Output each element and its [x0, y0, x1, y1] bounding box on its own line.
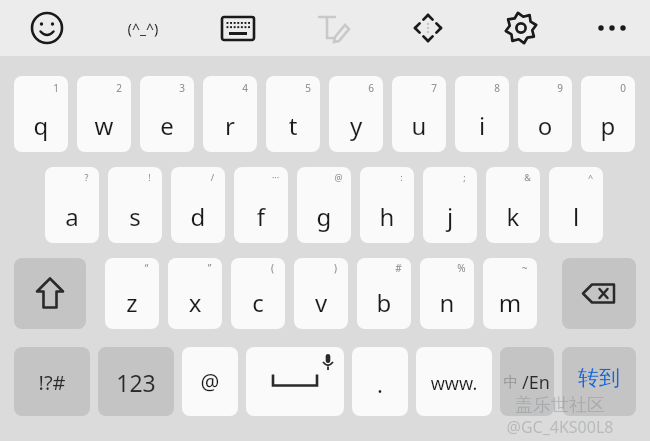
button[interactable]: Shift — [14, 258, 86, 329]
staticText: x — [168, 286, 222, 319]
button[interactable]: Backspace — [562, 258, 636, 329]
staticText: a — [45, 200, 99, 233]
staticText: /En — [518, 370, 554, 395]
button[interactable]: e — [140, 76, 194, 152]
button[interactable]: Go — [562, 347, 636, 416]
button[interactable]: g — [297, 167, 351, 243]
staticText: q — [14, 109, 68, 142]
staticText: 3 — [174, 81, 190, 95]
button[interactable]: s — [108, 167, 162, 243]
staticText: f — [234, 200, 288, 233]
button[interactable]: h — [360, 167, 414, 243]
staticText: ; — [456, 171, 473, 183]
staticText: 9 — [552, 81, 568, 95]
button[interactable]: v — [294, 258, 348, 329]
staticText: www. — [416, 371, 492, 396]
staticText: e — [140, 109, 194, 142]
staticText: (^_^) — [113, 19, 173, 38]
button[interactable]: Settings — [499, 6, 543, 50]
button[interactable]: y — [329, 76, 383, 152]
staticText: # — [390, 261, 407, 275]
button[interactable]: b — [357, 258, 411, 329]
staticText: / — [204, 171, 221, 183]
staticText: ? — [78, 171, 95, 183]
staticText: d — [171, 200, 225, 233]
button[interactable]: Space — [246, 347, 344, 416]
button[interactable]: More options — [590, 6, 634, 50]
staticText: 6 — [363, 81, 379, 95]
staticText: & — [519, 171, 536, 183]
button[interactable]: www dot — [416, 347, 492, 416]
button[interactable]: Space — [246, 347, 344, 416]
button[interactable]: Keyboard — [216, 6, 260, 50]
button[interactable]: At sign — [182, 347, 238, 416]
staticText: !?# — [14, 369, 90, 396]
button[interactable]: m — [483, 258, 537, 329]
staticText: ) — [327, 261, 344, 275]
button[interactable]: o — [518, 76, 572, 152]
button[interactable]: Shift — [14, 258, 86, 329]
button[interactable]: p — [581, 76, 635, 152]
button[interactable]: Numbers — [98, 347, 174, 416]
staticText: r — [203, 109, 257, 142]
button[interactable]: t — [266, 76, 320, 152]
staticText: c — [231, 286, 285, 319]
staticText: 2 — [111, 81, 127, 95]
button[interactable]: f — [234, 167, 288, 243]
staticText: y — [329, 109, 383, 142]
staticText: ( — [264, 261, 281, 275]
button[interactable]: j — [423, 167, 477, 243]
button[interactable]: a — [45, 167, 99, 243]
button[interactable]: Period — [352, 347, 408, 416]
staticText: 4 — [237, 81, 253, 95]
staticText: p — [581, 109, 635, 142]
staticText: 5 — [300, 81, 316, 95]
staticText: 7 — [426, 81, 442, 95]
button[interactable]: w — [77, 76, 131, 152]
staticText: ~ — [516, 261, 533, 275]
staticText: ! — [141, 171, 158, 183]
staticText: s — [108, 200, 162, 233]
button[interactable]: u — [392, 76, 446, 152]
button[interactable]: d — [171, 167, 225, 243]
button[interactable]: x — [168, 258, 222, 329]
staticText: ^ — [582, 171, 599, 183]
button[interactable]: c — [231, 258, 285, 329]
staticText: j — [423, 200, 477, 233]
staticText: @GC_4KS00L8 — [480, 416, 640, 438]
button[interactable]: r — [203, 76, 257, 152]
button[interactable]: Emoji — [25, 6, 69, 50]
button[interactable]: Kaomoji — [113, 6, 173, 50]
staticText: “ — [138, 261, 155, 275]
staticText: 转到 — [562, 365, 636, 391]
staticText: @ — [330, 171, 347, 183]
button[interactable]: Move cursor — [406, 6, 450, 50]
staticText: n — [420, 286, 474, 319]
staticText: 123 — [98, 367, 174, 398]
staticText: 盖乐世社区 — [480, 394, 640, 417]
button[interactable]: q — [14, 76, 68, 152]
staticText: 1 — [48, 81, 64, 95]
button[interactable]: k — [486, 167, 540, 243]
staticText: 中 — [498, 373, 524, 392]
button[interactable]: Symbols — [14, 347, 90, 416]
button[interactable]: Backspace — [562, 258, 636, 329]
staticText: m — [483, 286, 537, 319]
staticText: i — [455, 109, 509, 142]
staticText: k — [486, 200, 540, 233]
staticText: t — [266, 109, 320, 142]
staticText: u — [392, 109, 446, 142]
staticText: h — [360, 200, 414, 233]
staticText: ··· — [267, 171, 284, 183]
staticText: . — [352, 369, 408, 399]
staticText: 0 — [615, 81, 631, 95]
button[interactable]: Switch language — [500, 347, 554, 416]
button[interactable]: l — [549, 167, 603, 243]
staticText: @ — [182, 368, 238, 397]
staticText: % — [453, 261, 470, 275]
button[interactable]: n — [420, 258, 474, 329]
staticText: ” — [201, 261, 218, 275]
button[interactable]: i — [455, 76, 509, 152]
button[interactable]: Handwriting — [311, 6, 355, 50]
button[interactable]: z — [105, 258, 159, 329]
